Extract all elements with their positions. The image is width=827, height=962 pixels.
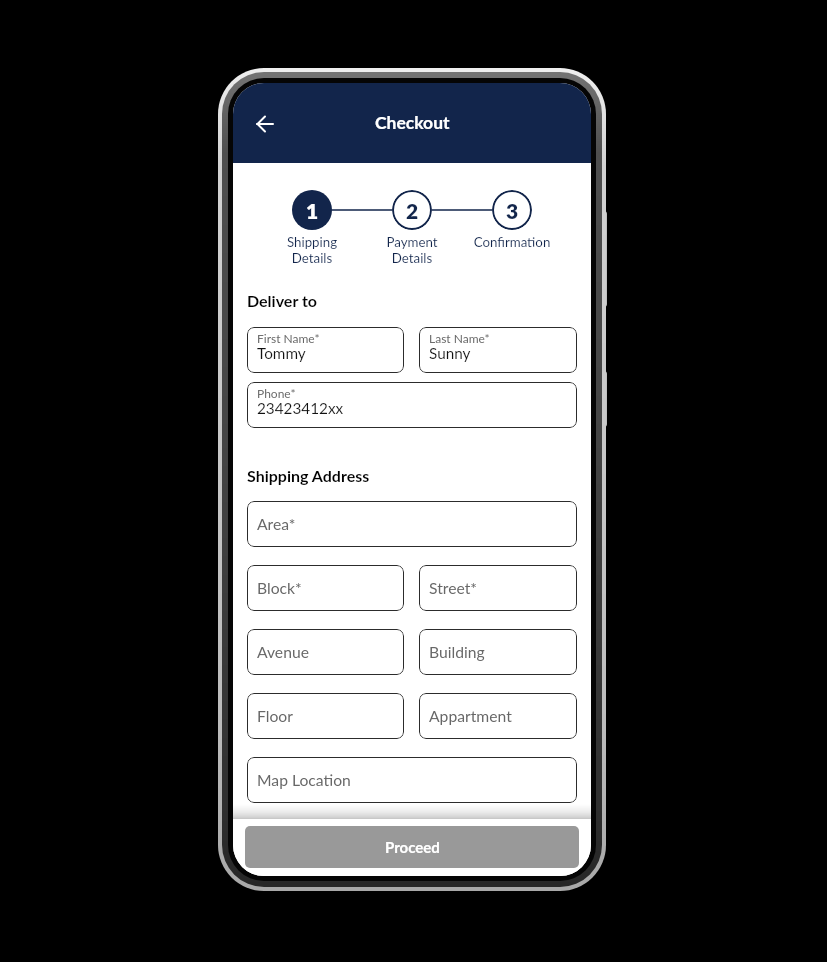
staticText: Map Location — [257, 771, 351, 790]
staticText: Sunny — [429, 344, 471, 362]
button[interactable]: Phone* — [247, 382, 577, 428]
staticText: 1 — [306, 198, 319, 223]
button[interactable]: Appartment — [419, 693, 577, 739]
staticText: Confirmation — [462, 234, 562, 250]
staticText: Last Name* — [429, 331, 490, 345]
button[interactable]: Street* — [419, 565, 577, 611]
staticText: Deliver to — [247, 291, 317, 310]
button[interactable]: 2 — [362, 190, 462, 266]
staticText: 2 — [406, 198, 419, 223]
staticText: Block* — [257, 579, 302, 598]
staticText: Building — [429, 643, 485, 662]
staticText: Floor — [257, 707, 293, 726]
button[interactable]: Map Location — [247, 757, 577, 803]
staticText: Checkout — [375, 112, 450, 133]
button[interactable]: Floor — [247, 693, 404, 739]
staticText: Phone* — [257, 386, 296, 400]
staticText: Tommy — [257, 344, 306, 362]
staticText: Area* — [257, 515, 296, 534]
staticText: 23423412xx — [257, 399, 344, 417]
button[interactable]: Proceed — [245, 826, 579, 868]
button[interactable]: Back — [244, 103, 286, 145]
button[interactable]: Building — [419, 629, 577, 675]
button[interactable]: 1 — [262, 190, 362, 266]
staticText: Avenue — [257, 643, 309, 662]
button[interactable]: Area* — [247, 501, 577, 547]
staticText: Appartment — [429, 707, 512, 726]
button[interactable]: Block* — [247, 565, 404, 611]
staticText: First Name* — [257, 331, 320, 345]
staticText: Shipping Details — [262, 234, 362, 266]
staticText: Proceed — [385, 838, 440, 856]
button[interactable]: Last Name* — [419, 327, 577, 373]
staticText: Shipping Address — [247, 466, 370, 485]
staticText: Street* — [429, 579, 477, 598]
button[interactable]: 3 — [462, 190, 562, 250]
button[interactable]: First Name* — [247, 327, 404, 373]
staticText: 3 — [506, 198, 519, 223]
staticText: Payment Details — [362, 234, 462, 266]
button[interactable]: Avenue — [247, 629, 404, 675]
